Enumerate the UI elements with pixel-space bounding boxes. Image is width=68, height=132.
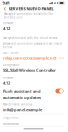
- staticText: Diagnostics: [3, 116, 18, 119]
- staticText: 9:41: [2, 0, 9, 6]
- staticText: 4.12: [3, 80, 10, 86]
- staticText: SERVERS NUEVO PANEL: [9, 6, 54, 11]
- staticText: LTE: [54, 1, 58, 5]
- staticText: info@panel.example: [3, 107, 42, 112]
- staticText: SSL-92x0 Wireless Controller: [3, 68, 56, 73]
- staticText: MQTT server: [3, 51, 19, 55]
- staticText: Designation: [3, 63, 20, 67]
- staticText: 4.12: [3, 26, 10, 31]
- staticText: ————: [3, 120, 19, 125]
- staticText: automatic updates: [3, 95, 41, 100]
- staticText: Push assistant and: [3, 89, 41, 94]
- staticText: Firmware: [3, 21, 14, 25]
- staticText: Managed connection details for the selec…: [4, 12, 54, 19]
- button[interactable]: Back: [2, 6, 7, 11]
- staticText: relay.connector.example.net: [3, 55, 57, 61]
- staticText: Maintenance window: [3, 103, 32, 106]
- staticText: Advanced connection parameters are liste…: [3, 42, 62, 49]
- staticText: Last synchronised with the cloud service: [3, 36, 58, 40]
- button[interactable]: Push assistant and automatic updates: [55, 89, 64, 93]
- staticText: Firmware: [3, 76, 14, 79]
